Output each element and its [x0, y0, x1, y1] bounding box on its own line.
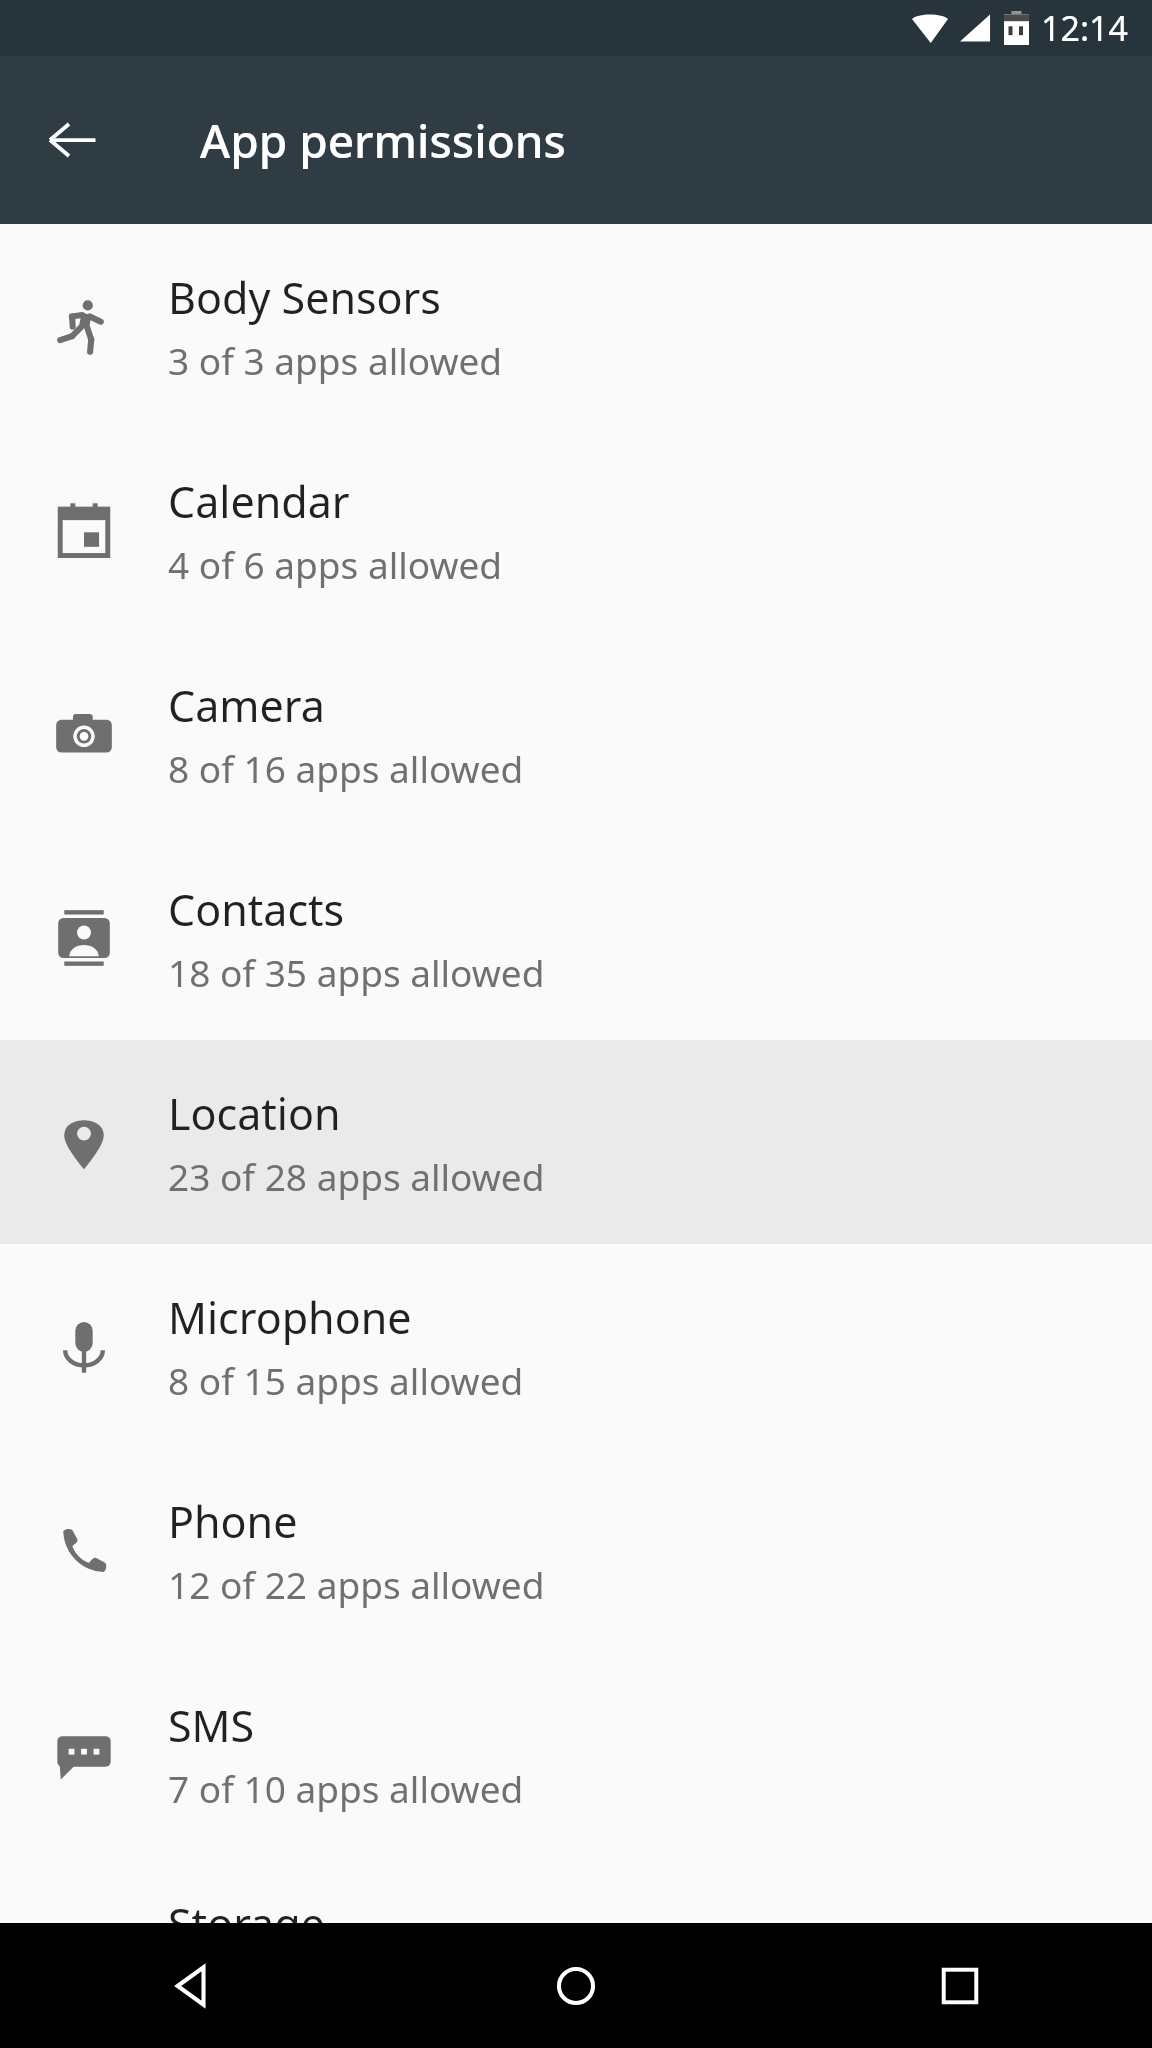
button[interactable]: Recent apps — [768, 1923, 1152, 2048]
staticText: Calendar — [168, 472, 350, 531]
button[interactable]: Location — [0, 1040, 1152, 1244]
staticText: 23 of 28 apps allowed — [168, 1151, 545, 1201]
staticText: Storage — [168, 1894, 325, 1953]
staticText: 7 of 10 apps allowed — [168, 1763, 524, 1813]
button[interactable]: Contacts — [0, 836, 1152, 1040]
staticText: 12:14 — [1041, 5, 1128, 51]
staticText: 18 of 35 apps allowed — [168, 947, 545, 997]
staticText: Location — [168, 1084, 341, 1143]
staticText: 12 of 22 apps allowed — [168, 1559, 545, 1609]
staticText: 8 of 16 apps allowed — [168, 743, 524, 793]
button[interactable]: Calendar — [0, 428, 1152, 632]
staticText: 3 of 3 apps allowed — [168, 335, 503, 385]
button[interactable]: SMS — [0, 1652, 1152, 1856]
staticText: 8 of 15 apps allowed — [168, 1355, 524, 1405]
staticText: 9 of 19 apps allowed — [168, 1961, 524, 2011]
button[interactable]: Home — [384, 1923, 768, 2048]
button[interactable]: Back — [0, 1923, 384, 2048]
staticText: App permissions — [200, 109, 566, 172]
staticText: SMS — [168, 1696, 255, 1755]
staticText: Camera — [168, 676, 325, 735]
button[interactable]: Camera — [0, 632, 1152, 836]
button[interactable]: Phone — [0, 1448, 1152, 1652]
button[interactable]: Body Sensors — [0, 224, 1152, 428]
button[interactable]: Navigate up — [30, 98, 114, 182]
staticText: Contacts — [168, 880, 345, 939]
staticText: Microphone — [168, 1288, 412, 1347]
button[interactable]: Microphone — [0, 1244, 1152, 1448]
staticText: Phone — [168, 1492, 298, 1551]
button[interactable]: Storage — [0, 1856, 1152, 2048]
staticText: 4 of 6 apps allowed — [168, 539, 503, 589]
staticText: Body Sensors — [168, 268, 441, 327]
